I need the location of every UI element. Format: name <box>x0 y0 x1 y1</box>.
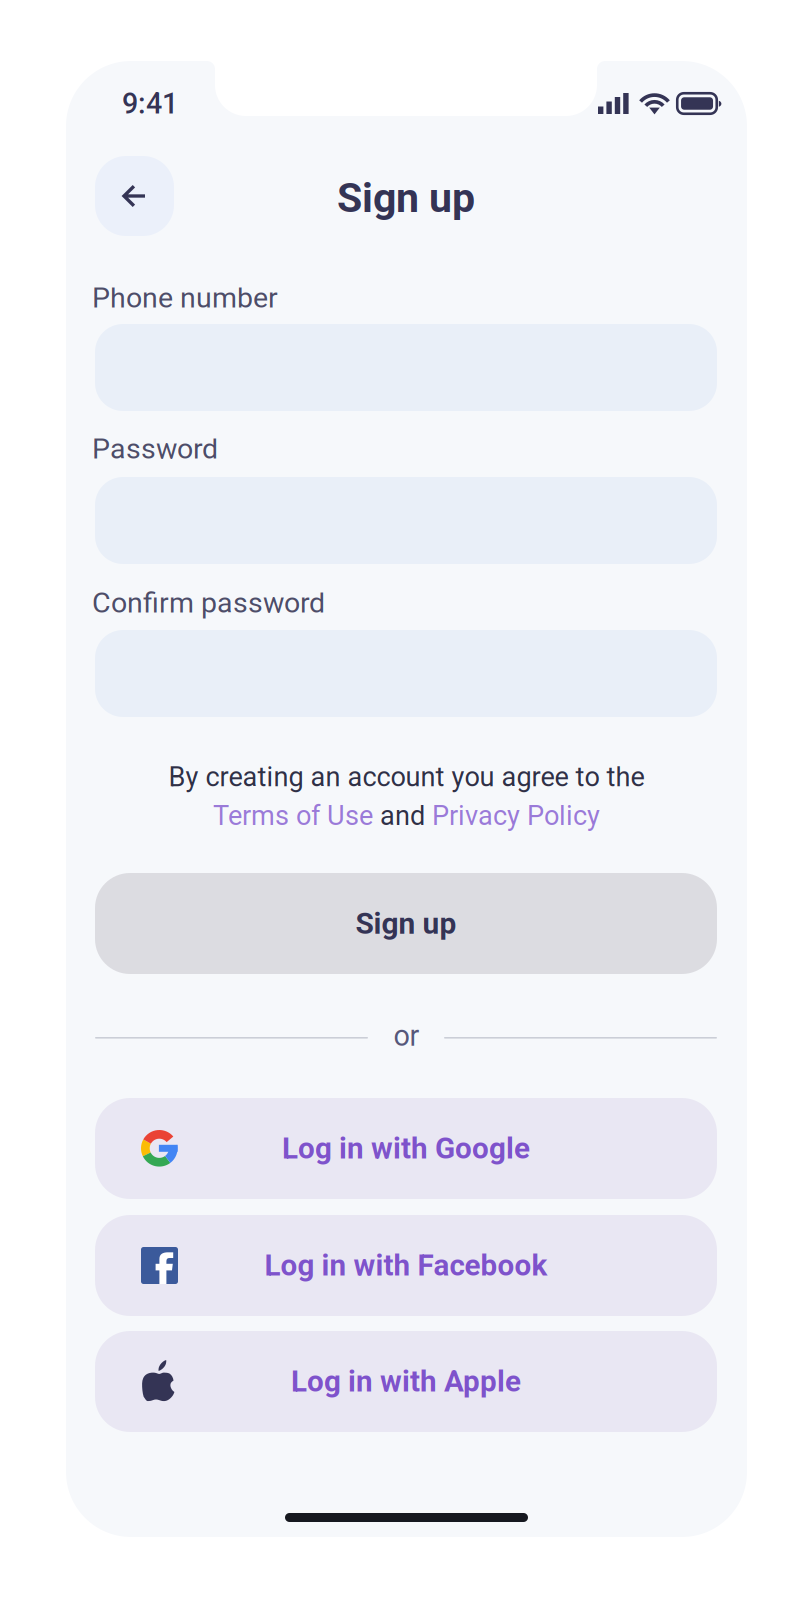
staticText: Log in with Google <box>282 1131 530 1166</box>
staticText: Password <box>92 432 218 465</box>
button[interactable]: Log in with Apple <box>95 1331 717 1432</box>
button[interactable]: Log in with Google <box>95 1098 717 1199</box>
staticText: Sign up <box>355 906 456 941</box>
staticText: Log in with Apple <box>291 1364 521 1399</box>
staticText: or <box>393 1019 419 1053</box>
staticText: Privacy Policy <box>432 800 600 832</box>
staticText: Phone number <box>92 281 278 314</box>
staticText: Log in with Facebook <box>264 1248 547 1283</box>
button[interactable]: Log in with Facebook <box>95 1215 717 1316</box>
button[interactable]: Back <box>95 156 174 236</box>
staticText: Terms of Use <box>213 800 373 832</box>
staticText: and <box>373 800 432 832</box>
staticText: Sign up <box>337 174 475 222</box>
staticText: By creating an account you agree to the <box>168 761 644 793</box>
staticText: 9:41 <box>122 87 178 121</box>
staticText: Confirm password <box>92 586 325 619</box>
button[interactable]: Sign up <box>95 873 717 974</box>
